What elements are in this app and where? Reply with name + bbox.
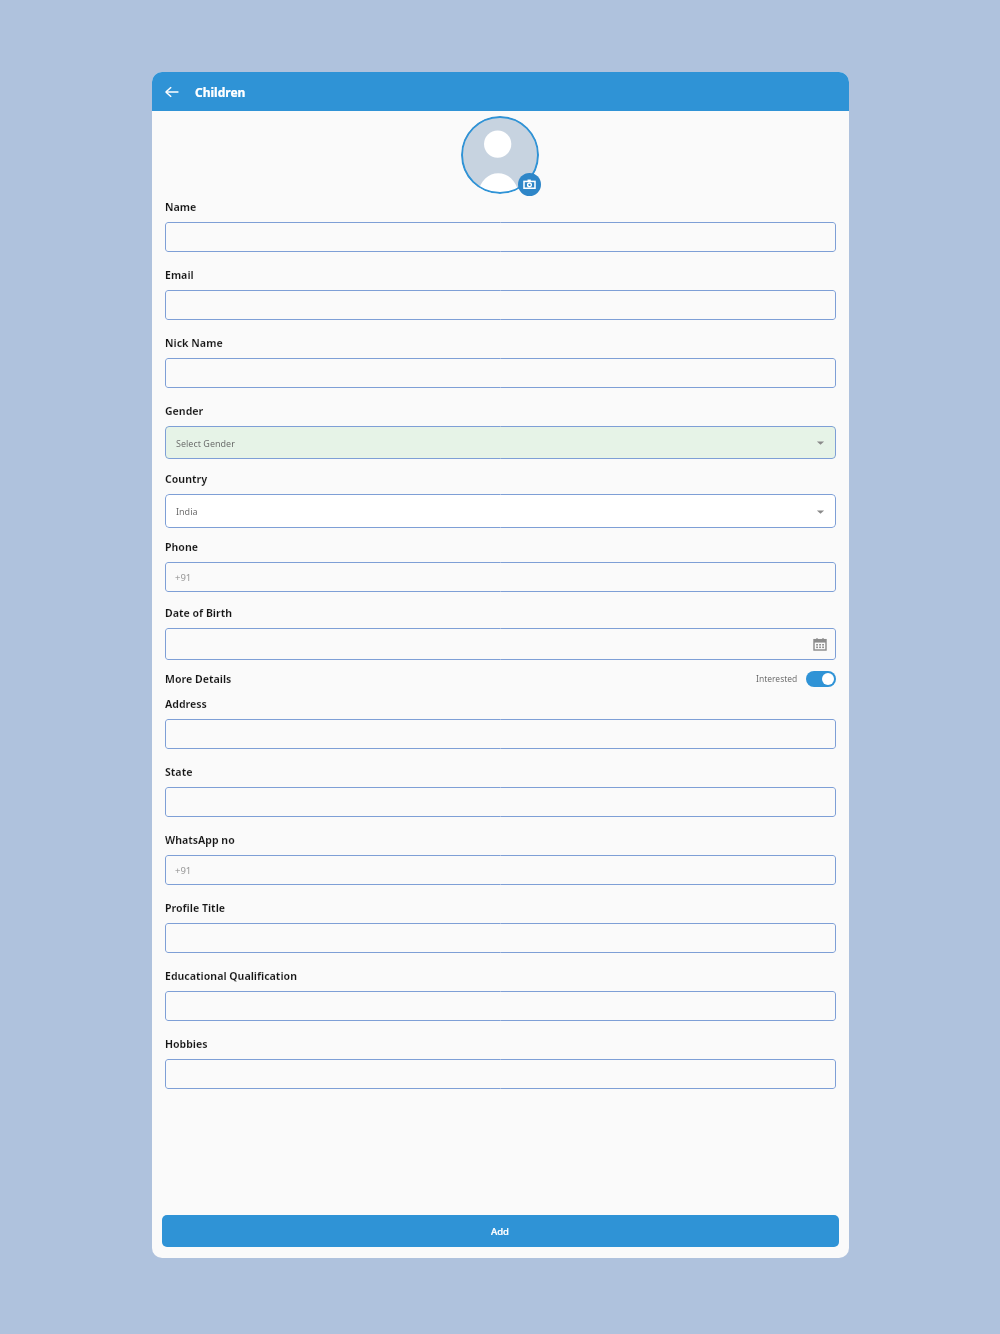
- staticText: +91: [175, 864, 192, 877]
- staticText: Country: [165, 472, 208, 486]
- staticText: India: [176, 505, 198, 517]
- button[interactable]: [165, 222, 836, 252]
- staticText: Educational Qualification: [165, 969, 297, 983]
- staticText: Children: [195, 84, 246, 100]
- button[interactable]: India: [165, 494, 836, 528]
- button[interactable]: [165, 719, 836, 749]
- button[interactable]: Back: [158, 78, 186, 106]
- button[interactable]: +91: [165, 562, 836, 592]
- staticText: Hobbies: [165, 1037, 208, 1051]
- staticText: State: [165, 765, 193, 779]
- button[interactable]: Add: [162, 1215, 839, 1247]
- staticText: Nick Name: [165, 336, 223, 350]
- button[interactable]: Interested: [756, 671, 836, 687]
- staticText: Date of Birth: [165, 606, 233, 620]
- button[interactable]: +91: [165, 855, 836, 885]
- staticText: Address: [165, 697, 207, 711]
- staticText: +91: [175, 571, 192, 584]
- button[interactable]: Change photo: [518, 173, 541, 196]
- button[interactable]: [165, 628, 836, 660]
- staticText: Name: [165, 200, 197, 214]
- button[interactable]: Select Gender: [165, 426, 836, 459]
- staticText: Select Gender: [176, 437, 235, 449]
- button[interactable]: [165, 358, 836, 388]
- button[interactable]: Profile photo: [461, 116, 539, 194]
- staticText: Interested: [756, 673, 798, 685]
- button[interactable]: [165, 290, 836, 320]
- button[interactable]: [165, 1059, 836, 1089]
- button[interactable]: [165, 991, 836, 1021]
- staticText: WhatsApp no: [165, 833, 235, 847]
- button[interactable]: [165, 787, 836, 817]
- staticText: Gender: [165, 404, 204, 418]
- button[interactable]: [165, 923, 836, 953]
- staticText: Add: [491, 1225, 510, 1238]
- staticText: More Details: [165, 672, 232, 686]
- staticText: Email: [165, 268, 194, 282]
- staticText: Profile Title: [165, 901, 226, 915]
- staticText: Phone: [165, 540, 199, 554]
